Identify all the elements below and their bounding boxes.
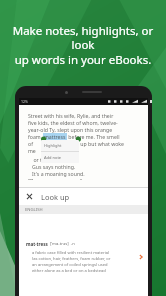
button[interactable]: Close (25, 192, 34, 201)
staticText: me (28, 147, 36, 154)
staticText: Street with his wife, Rylie, and their (28, 112, 114, 119)
button[interactable]: mat·tress (19, 214, 148, 296)
button[interactable]: Add note (41, 152, 79, 163)
staticText: year-old Ty, slept upon this orange (28, 126, 113, 133)
staticText: mat·tress (26, 241, 48, 247)
staticText: 12% (21, 99, 28, 104)
staticText: five kids, the eldest of whom, twelve- (28, 119, 118, 126)
staticText: Gus says nothing. (28, 163, 76, 170)
staticText: or that?" (28, 156, 55, 163)
other: More (137, 253, 145, 261)
staticText: Make notes, highlights, or look up words… (6, 23, 160, 68)
staticText: before me. The smell (67, 133, 120, 140)
staticText: It's a moaning sound. (28, 170, 85, 177)
staticText: ENGLISH (25, 207, 43, 213)
staticText: Highlight (44, 143, 62, 148)
staticText: of (28, 140, 35, 147)
staticText: [ˈma-trəs] -n (50, 241, 75, 247)
staticText: "Buuuuuuuuuuuuuu." (28, 177, 82, 180)
button[interactable]: Close (19, 188, 148, 205)
staticText: up but what woke (79, 140, 125, 147)
button[interactable]: Highlight (41, 140, 79, 151)
staticText: Add note (44, 155, 62, 160)
staticText: mattress (44, 133, 66, 140)
staticText: a fabric case filled with resilient mate… (32, 250, 111, 274)
staticText: Look up (41, 192, 70, 202)
staticText: foam (28, 133, 43, 140)
